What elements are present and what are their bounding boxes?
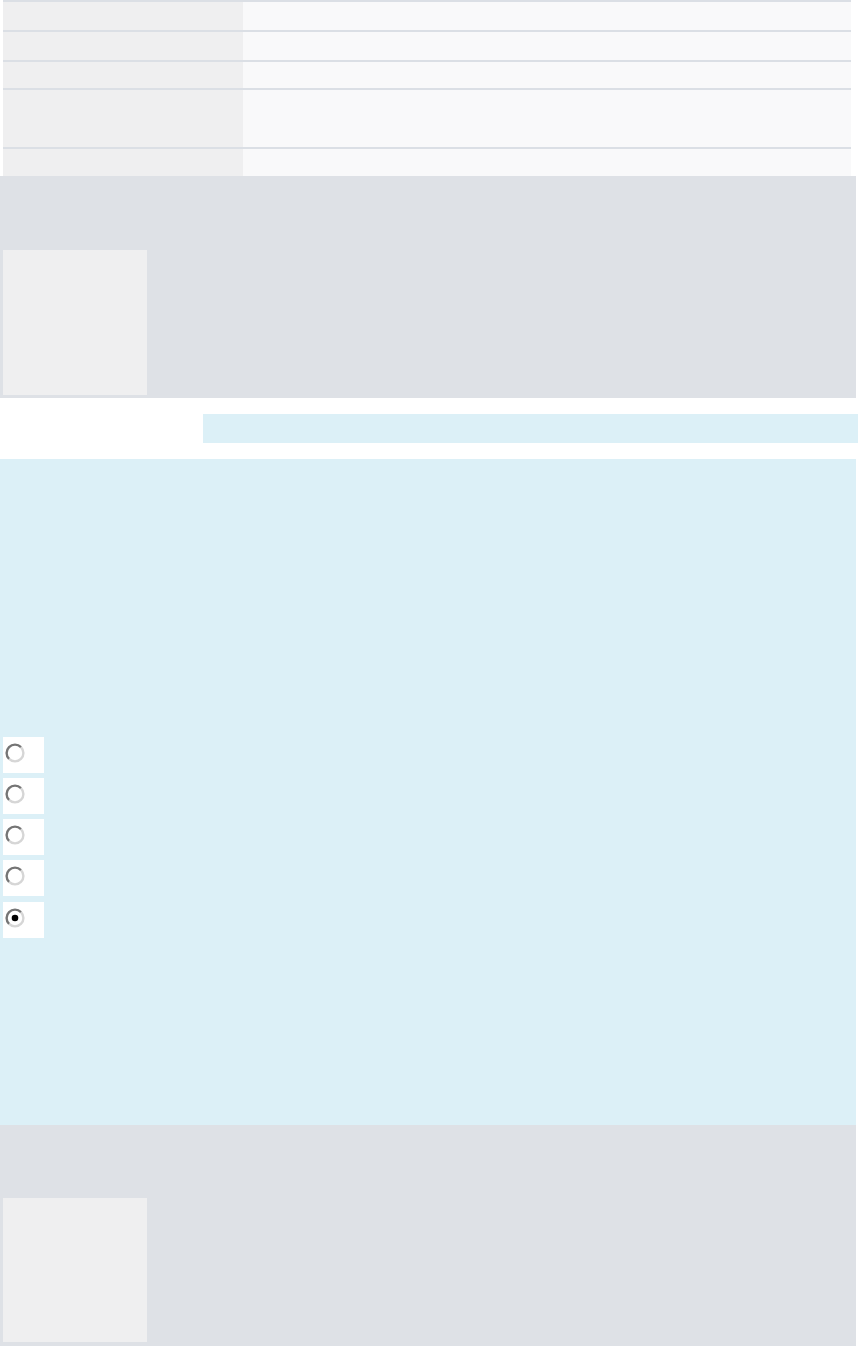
button[interactable]: Option [3,860,44,896]
button[interactable]: Option [3,778,44,814]
button[interactable]: Option [3,737,44,773]
button[interactable]: Row label [3,149,243,178]
button[interactable]: Row value [243,149,851,178]
button[interactable]: Option selected [3,902,44,938]
button[interactable]: Option [3,819,44,855]
